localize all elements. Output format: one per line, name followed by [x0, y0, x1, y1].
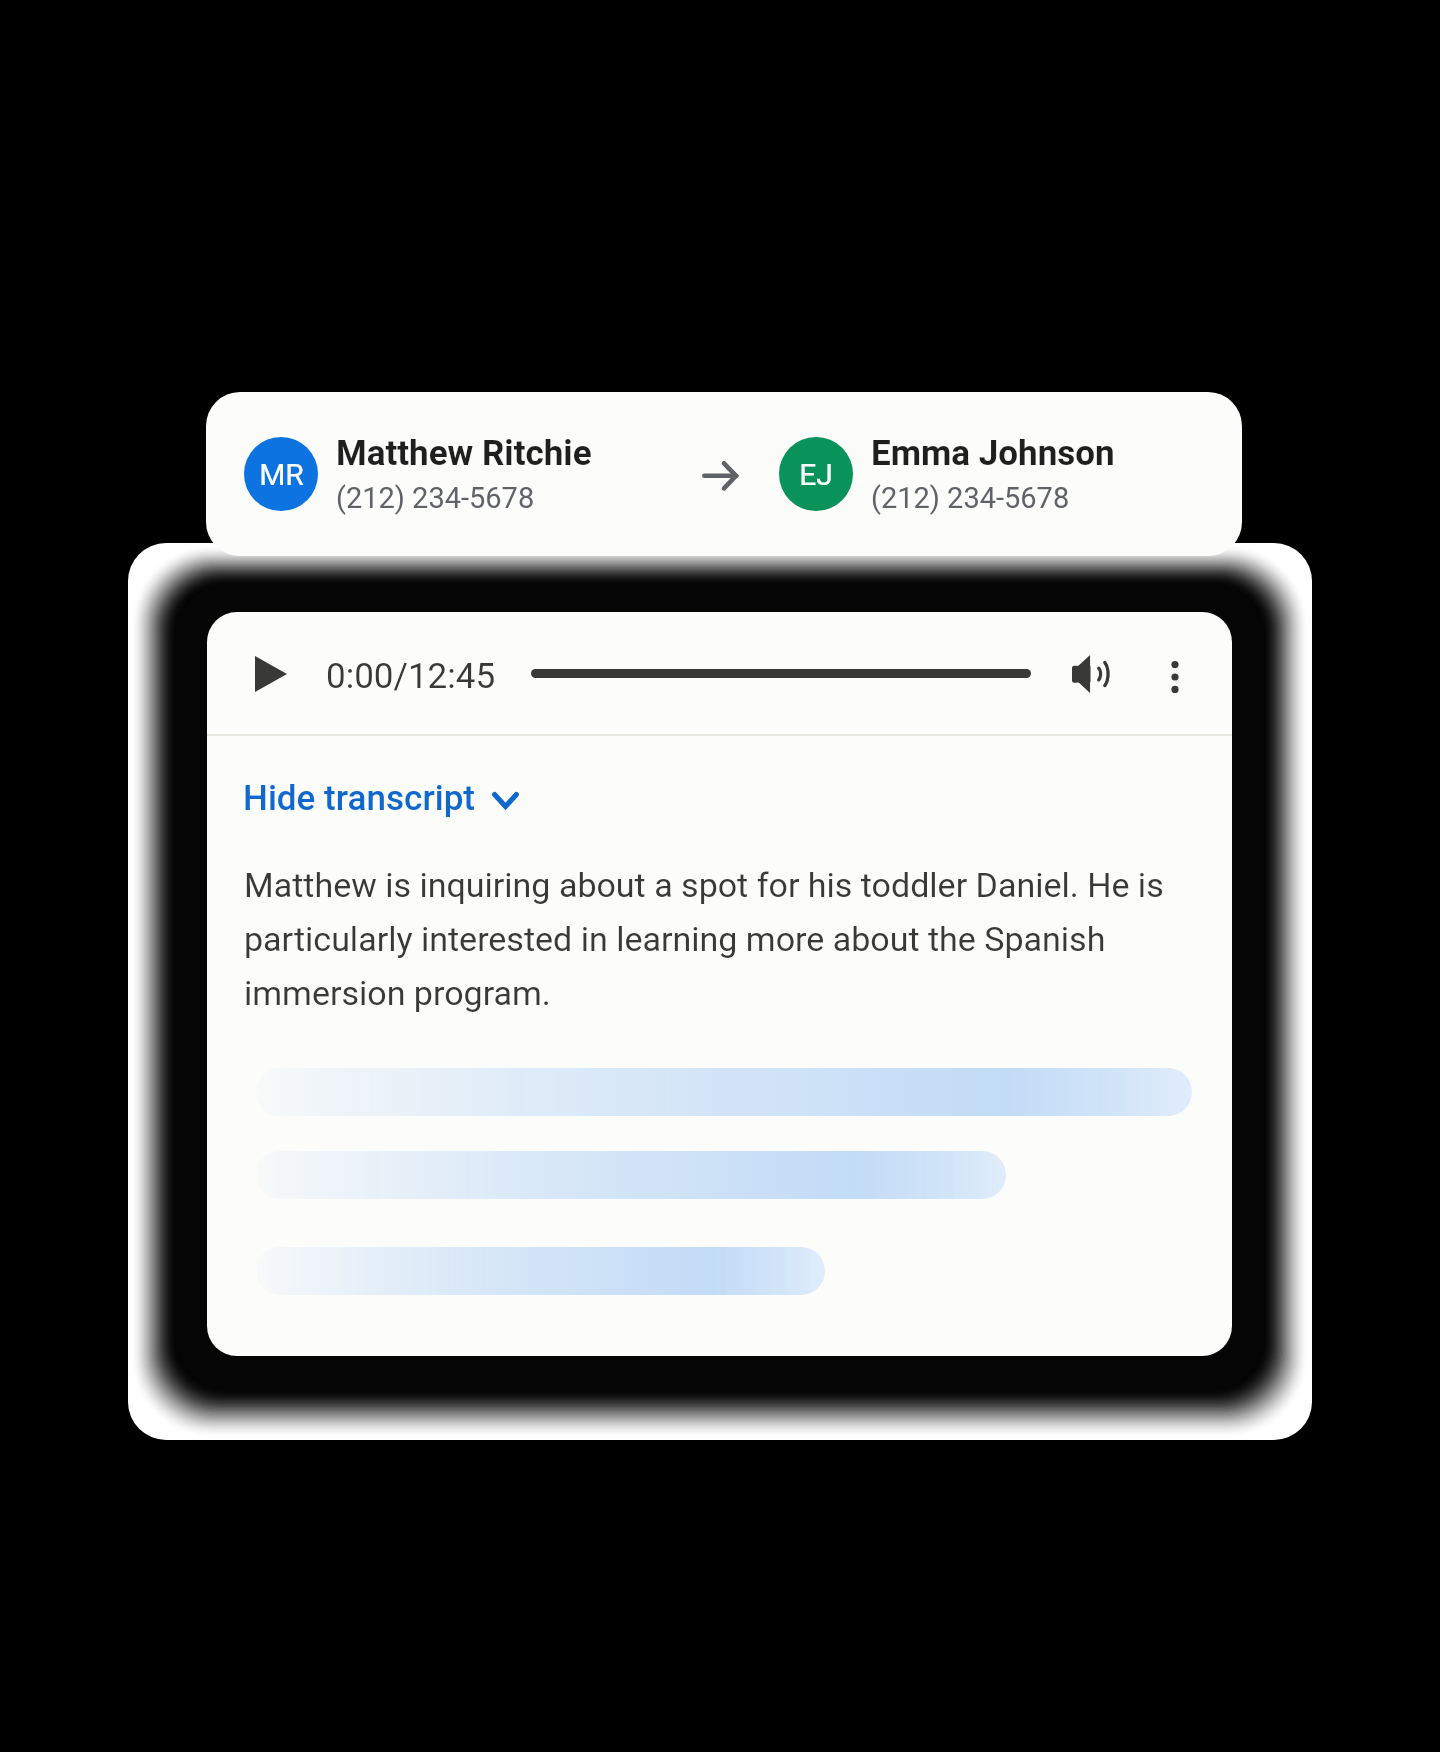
staticText: 0:00/12:45: [326, 656, 496, 697]
other: Transferred to: [702, 461, 742, 497]
staticText: EJ: [799, 457, 833, 492]
button[interactable]: More options: [1147, 649, 1203, 705]
button[interactable]: Hide transcript: [229, 768, 531, 829]
staticText: Matthew is inquiring about a spot for hi…: [244, 865, 1206, 1013]
staticText: Emma Johnson: [871, 433, 1115, 474]
staticText: MR: [259, 457, 304, 492]
button[interactable]: Volume: [1064, 645, 1122, 703]
staticText: (212) 234-5678: [336, 481, 535, 515]
button[interactable]: MR: [241, 392, 592, 556]
button[interactable]: EJ: [776, 392, 1115, 556]
button[interactable]: Play: [243, 646, 299, 702]
staticText: (212) 234-5678: [871, 481, 1070, 515]
staticText: Hide transcript: [243, 778, 476, 819]
staticText: Matthew Ritchie: [336, 433, 592, 474]
